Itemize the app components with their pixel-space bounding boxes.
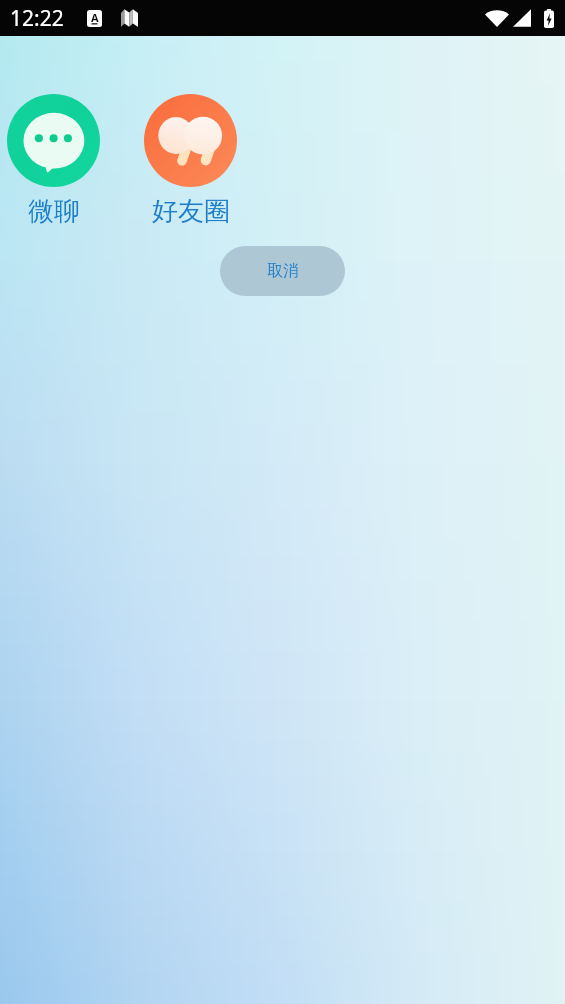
- staticText: 微聊: [28, 195, 80, 228]
- staticText: 12:22: [10, 4, 64, 33]
- staticText: 取消: [267, 261, 299, 281]
- staticText: A: [91, 10, 99, 23]
- button[interactable]: 好友圈: [144, 94, 237, 228]
- button[interactable]: 取消: [220, 246, 345, 296]
- staticText: 好友圈: [152, 195, 230, 228]
- button[interactable]: 微聊: [7, 94, 100, 228]
